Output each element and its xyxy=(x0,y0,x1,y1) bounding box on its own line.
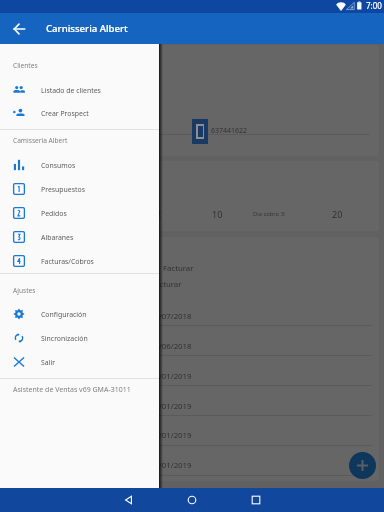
staticText: Consumos xyxy=(41,161,76,170)
button[interactable]: Crear Prospect xyxy=(0,101,159,125)
staticText: Sincronización xyxy=(41,334,88,343)
staticText: Facturar xyxy=(163,263,194,274)
staticText: 31/01/2019 xyxy=(150,430,192,441)
button[interactable]: Sincronización xyxy=(0,326,159,350)
staticText: Clientes xyxy=(13,61,38,70)
staticText: Camisseria Albert xyxy=(13,136,68,145)
staticText: Listado de clientes xyxy=(41,86,101,95)
staticText: 31/01/2019 xyxy=(150,460,192,471)
staticText: Dia cobro 3: xyxy=(253,210,286,218)
staticText: 637441622 xyxy=(211,126,248,136)
staticText: 20 xyxy=(332,208,343,220)
staticText: Crear Prospect xyxy=(41,109,89,118)
button[interactable]: Listado de clientes xyxy=(0,78,159,102)
button[interactable]: Albaranes xyxy=(0,225,159,249)
staticText: Salir xyxy=(41,358,56,367)
staticText: Facturas/Cobros xyxy=(41,257,94,266)
staticText: 30/06/2018 xyxy=(150,341,192,352)
button[interactable]: Salir xyxy=(0,350,159,374)
staticText: 31/01/2019 xyxy=(150,371,192,382)
staticText: Facturar xyxy=(151,279,182,290)
staticText: Presupuestos xyxy=(41,185,85,194)
staticText: 31/01/2019 xyxy=(150,401,192,412)
button[interactable]: Pedidos xyxy=(0,201,159,225)
staticText: Configuración xyxy=(41,310,87,319)
staticText: 30/07/2018 xyxy=(150,311,192,322)
button[interactable]: Back xyxy=(119,490,139,510)
staticText: 10 xyxy=(212,208,223,220)
staticText: 7:00 xyxy=(366,0,382,11)
staticText: Pedidos xyxy=(41,209,67,218)
button[interactable]: Facturas/Cobros xyxy=(0,249,159,273)
button[interactable]: Home xyxy=(182,490,202,510)
button[interactable]: Configuración xyxy=(0,302,159,326)
staticText: Ajustes xyxy=(13,286,36,295)
button[interactable]: Presupuestos xyxy=(0,177,159,201)
button[interactable]: Add xyxy=(349,452,376,479)
button[interactable]: Recents xyxy=(246,490,266,510)
staticText: Asistente de Ventas v69 GMA-31011 xyxy=(13,385,131,395)
button[interactable]: Consumos xyxy=(0,153,159,177)
staticText: Albaranes xyxy=(41,233,74,242)
button[interactable]: Back xyxy=(10,20,28,38)
staticText: Carnisseria Albert xyxy=(46,22,128,35)
staticText: 2 xyxy=(156,208,162,220)
